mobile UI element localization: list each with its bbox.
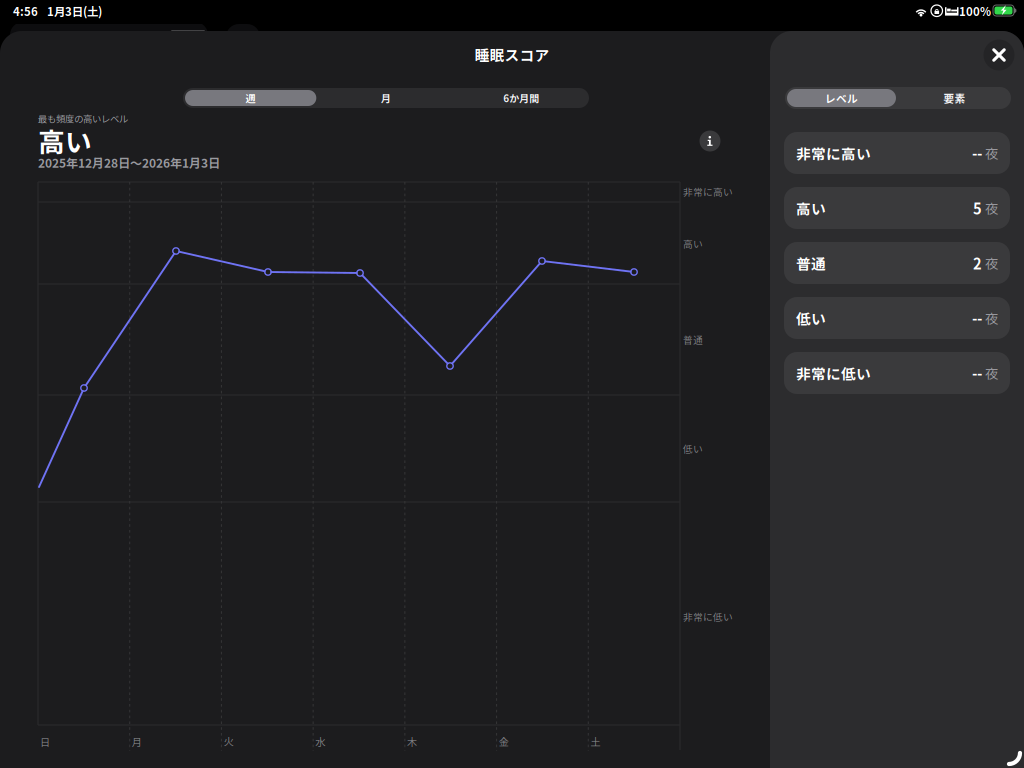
- staticText: --: [972, 142, 982, 164]
- staticText: 睡眠スコア: [474, 44, 549, 65]
- staticText: 低い: [683, 441, 703, 456]
- button[interactable]: 詳細情報: [695, 126, 725, 156]
- staticText: 2025年12月28日〜2026年1月3日: [38, 154, 220, 171]
- button[interactable]: 週: [183, 88, 318, 108]
- staticText: 高い: [38, 121, 92, 160]
- button[interactable]: レベル: [785, 87, 898, 109]
- staticText: 月: [132, 734, 142, 749]
- staticText: 週: [246, 91, 256, 105]
- button[interactable]: 高い: [784, 187, 1010, 229]
- staticText: 夜: [982, 253, 998, 273]
- staticText: 100%: [959, 3, 991, 19]
- staticText: --: [972, 362, 982, 384]
- staticText: 普通: [796, 252, 826, 274]
- staticText: --: [972, 307, 982, 329]
- button[interactable]: 要素: [898, 87, 1011, 109]
- staticText: 2: [973, 252, 982, 274]
- staticText: 4:56 1月3日(土): [13, 3, 102, 19]
- button[interactable]: 低い: [784, 297, 1010, 339]
- button[interactable]: 非常に高い: [784, 132, 1010, 174]
- staticText: 夜: [982, 198, 998, 218]
- staticText: 6か月間: [503, 91, 539, 105]
- button[interactable]: 閉じる: [979, 35, 1019, 75]
- staticText: 月: [381, 91, 391, 105]
- button[interactable]: 普通: [784, 242, 1010, 284]
- staticText: 最も頻度の高いレベル: [38, 112, 128, 125]
- button[interactable]: 6か月間: [454, 88, 589, 108]
- staticText: 普通: [683, 332, 703, 347]
- staticText: 高い: [796, 197, 826, 219]
- staticText: 夜: [982, 363, 998, 383]
- staticText: レベル: [825, 90, 858, 106]
- staticText: 水: [315, 734, 325, 749]
- staticText: 金: [499, 734, 509, 749]
- staticText: 木: [407, 734, 417, 749]
- staticText: 5: [973, 197, 982, 219]
- staticText: 夜: [982, 143, 998, 163]
- staticText: 高い: [683, 236, 703, 251]
- staticText: 夜: [982, 308, 998, 328]
- staticText: 非常に低い: [796, 362, 871, 384]
- staticText: 非常に低い: [683, 609, 733, 624]
- staticText: 土: [590, 734, 600, 749]
- staticText: 日: [40, 734, 50, 749]
- staticText: 非常に高い: [796, 142, 871, 164]
- button[interactable]: 非常に低い: [784, 352, 1010, 394]
- staticText: 要素: [943, 90, 965, 106]
- staticText: 火: [223, 734, 233, 749]
- button[interactable]: 月: [318, 88, 454, 108]
- staticText: 低い: [796, 307, 826, 329]
- staticText: 非常に高い: [683, 184, 733, 199]
